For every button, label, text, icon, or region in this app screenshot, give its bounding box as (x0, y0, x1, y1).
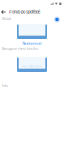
staticText: Pohyb po spotřebě (9, 10, 40, 14)
staticText: Naskenovat (22, 42, 41, 45)
staticText: Sklad (2, 17, 11, 21)
staticText: Navigace čtení košíku (2, 47, 38, 51)
button[interactable]: Information (54, 16, 60, 22)
button[interactable]: Back (1, 8, 7, 15)
staticText: Info (2, 84, 8, 88)
button[interactable]: Naskenovat (0, 41, 64, 46)
staticText: nic zde není (22, 65, 42, 68)
